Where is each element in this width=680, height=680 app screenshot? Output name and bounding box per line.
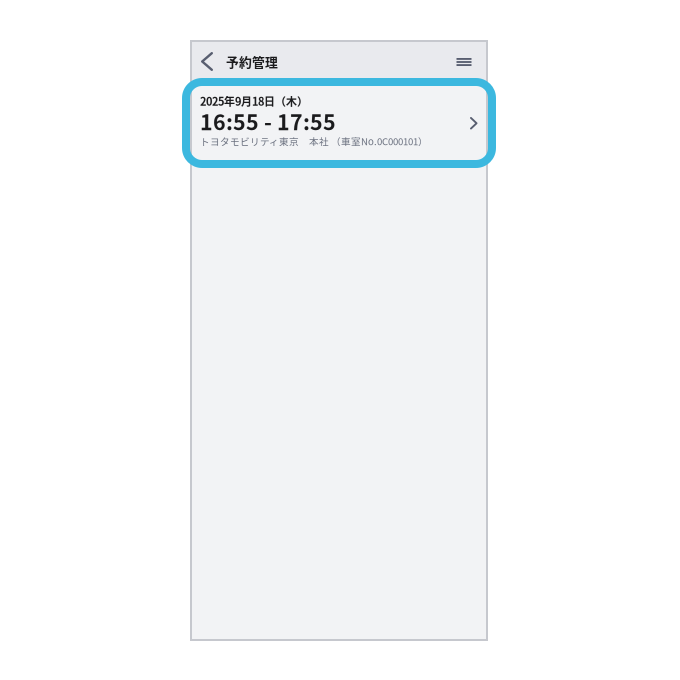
button[interactable]: Back [194, 45, 220, 78]
staticText: 予約管理 [226, 52, 278, 71]
button[interactable]: 2025年9月18日（木） [186, 82, 492, 164]
staticText: 16:55 - 17:55 [200, 106, 336, 136]
staticText: トヨタモビリティ東京 本社 （車室No.0C000101） [200, 134, 428, 148]
staticText: 2025年9月18日（木） [200, 93, 308, 109]
button[interactable]: Menu [449, 48, 479, 76]
